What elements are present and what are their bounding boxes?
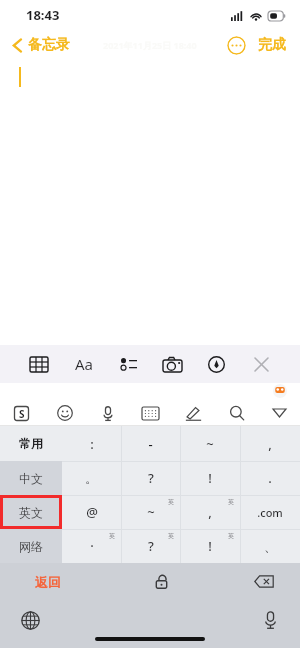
button[interactable]: - <box>121 426 180 461</box>
button[interactable]: ! <box>180 461 240 495</box>
button[interactable]: 常用 <box>0 426 62 461</box>
staticText: ~ <box>206 435 214 453</box>
staticText: 英 <box>168 498 174 506</box>
staticText: 。 <box>85 470 98 486</box>
staticText: 英文 <box>19 505 43 520</box>
staticText: - <box>148 435 153 453</box>
staticText: 英 <box>109 532 115 540</box>
staticText: 网络 <box>19 539 43 554</box>
button[interactable]: Voice input <box>253 603 287 637</box>
button[interactable]: .com <box>240 495 300 529</box>
button[interactable]: ? <box>121 461 180 495</box>
button[interactable]: 返回 <box>0 563 95 600</box>
button[interactable]: 完成 <box>256 33 288 57</box>
button[interactable]: ~ <box>121 495 180 529</box>
staticText: ? <box>148 537 154 555</box>
staticText: S <box>19 407 25 421</box>
button[interactable]: Delete <box>228 563 300 600</box>
staticText: ! <box>208 537 212 555</box>
button[interactable]: Avatar <box>272 383 288 399</box>
button[interactable]: 网络 <box>0 529 62 563</box>
staticText: · <box>90 537 94 555</box>
button[interactable]: Markup <box>201 349 231 379</box>
button[interactable]: ? <box>121 529 180 563</box>
staticText: ? <box>148 469 154 487</box>
button[interactable]: Close keyboard <box>246 349 276 379</box>
staticText: 18:43 <box>26 6 60 24</box>
staticText: 中文 <box>19 471 43 486</box>
staticText: 英 <box>228 498 234 506</box>
button[interactable]: Search <box>215 400 258 426</box>
staticText: , <box>208 503 212 521</box>
staticText: 英 <box>228 532 234 540</box>
button[interactable]: Table <box>24 349 54 379</box>
button[interactable]: 中文 <box>0 461 62 495</box>
staticText: 常用 <box>19 436 43 451</box>
button[interactable]: Emoji <box>43 400 86 426</box>
staticText: @ <box>86 503 98 521</box>
button[interactable]: , <box>180 495 240 529</box>
button[interactable]: , <box>240 426 300 461</box>
button[interactable]: . <box>240 461 300 495</box>
button[interactable]: Sogou input <box>0 400 43 426</box>
button[interactable]: ~ <box>180 426 240 461</box>
staticText: 英 <box>168 532 174 540</box>
staticText: 完成 <box>258 36 286 54</box>
button[interactable]: @ <box>62 495 121 529</box>
staticText: ! <box>208 469 212 487</box>
button[interactable]: Checklist <box>113 349 143 379</box>
button[interactable]: Camera <box>157 349 187 379</box>
button[interactable]: Handwriting <box>172 400 215 426</box>
staticText: : <box>90 435 94 453</box>
button[interactable]: Voice input <box>86 400 129 426</box>
staticText: ~ <box>147 503 155 521</box>
staticText: .com <box>257 505 283 520</box>
button[interactable]: 。 <box>62 461 121 495</box>
button[interactable]: Keyboard settings <box>129 400 172 426</box>
button[interactable]: 备忘录 <box>8 33 74 57</box>
staticText: . <box>268 469 272 487</box>
button[interactable]: · <box>62 529 121 563</box>
button[interactable]: 、 <box>240 529 300 563</box>
staticText: 备忘录 <box>28 36 70 54</box>
staticText: , <box>268 435 272 453</box>
button[interactable]: Lock <box>95 563 228 600</box>
button[interactable]: Change language <box>13 603 47 637</box>
button[interactable]: : <box>62 426 121 461</box>
button[interactable]: More options <box>227 36 246 55</box>
staticText: 、 <box>264 538 277 554</box>
staticText: Aa <box>75 354 94 374</box>
button[interactable]: Hide keyboard <box>258 400 300 426</box>
staticText: 返回 <box>35 574 61 590</box>
button[interactable]: ! <box>180 529 240 563</box>
button[interactable]: Text format <box>69 349 99 379</box>
button[interactable]: 英文 <box>0 495 62 529</box>
